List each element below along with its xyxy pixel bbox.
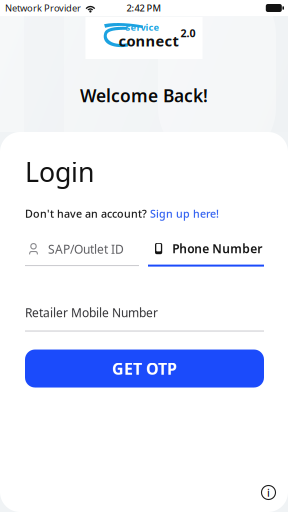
staticText: Login — [25, 154, 94, 189]
staticText: GET OTP — [112, 358, 177, 379]
staticText: Sign up here! — [150, 206, 219, 221]
staticText: service — [125, 21, 159, 33]
staticText: Network Provider — [5, 2, 81, 14]
button[interactable]: Phone Number — [148, 243, 264, 267]
staticText: Retailer Mobile Number — [25, 305, 158, 320]
button[interactable]: Sign up here! — [150, 206, 219, 221]
button[interactable]: SAP/Outlet ID — [25, 243, 139, 266]
staticText: Welcome Back! — [80, 84, 208, 107]
staticText: SAP/Outlet ID — [48, 241, 124, 257]
staticText: 2.0 — [180, 26, 195, 40]
staticText: 2:42 PM — [126, 2, 161, 14]
staticText: i — [267, 485, 270, 500]
staticText: Don't have an account? — [25, 206, 150, 221]
staticText: connect — [118, 31, 178, 50]
button[interactable]: Information — [249, 473, 288, 512]
button[interactable]: GET OTP — [25, 349, 264, 387]
staticText: Phone Number — [172, 241, 262, 256]
